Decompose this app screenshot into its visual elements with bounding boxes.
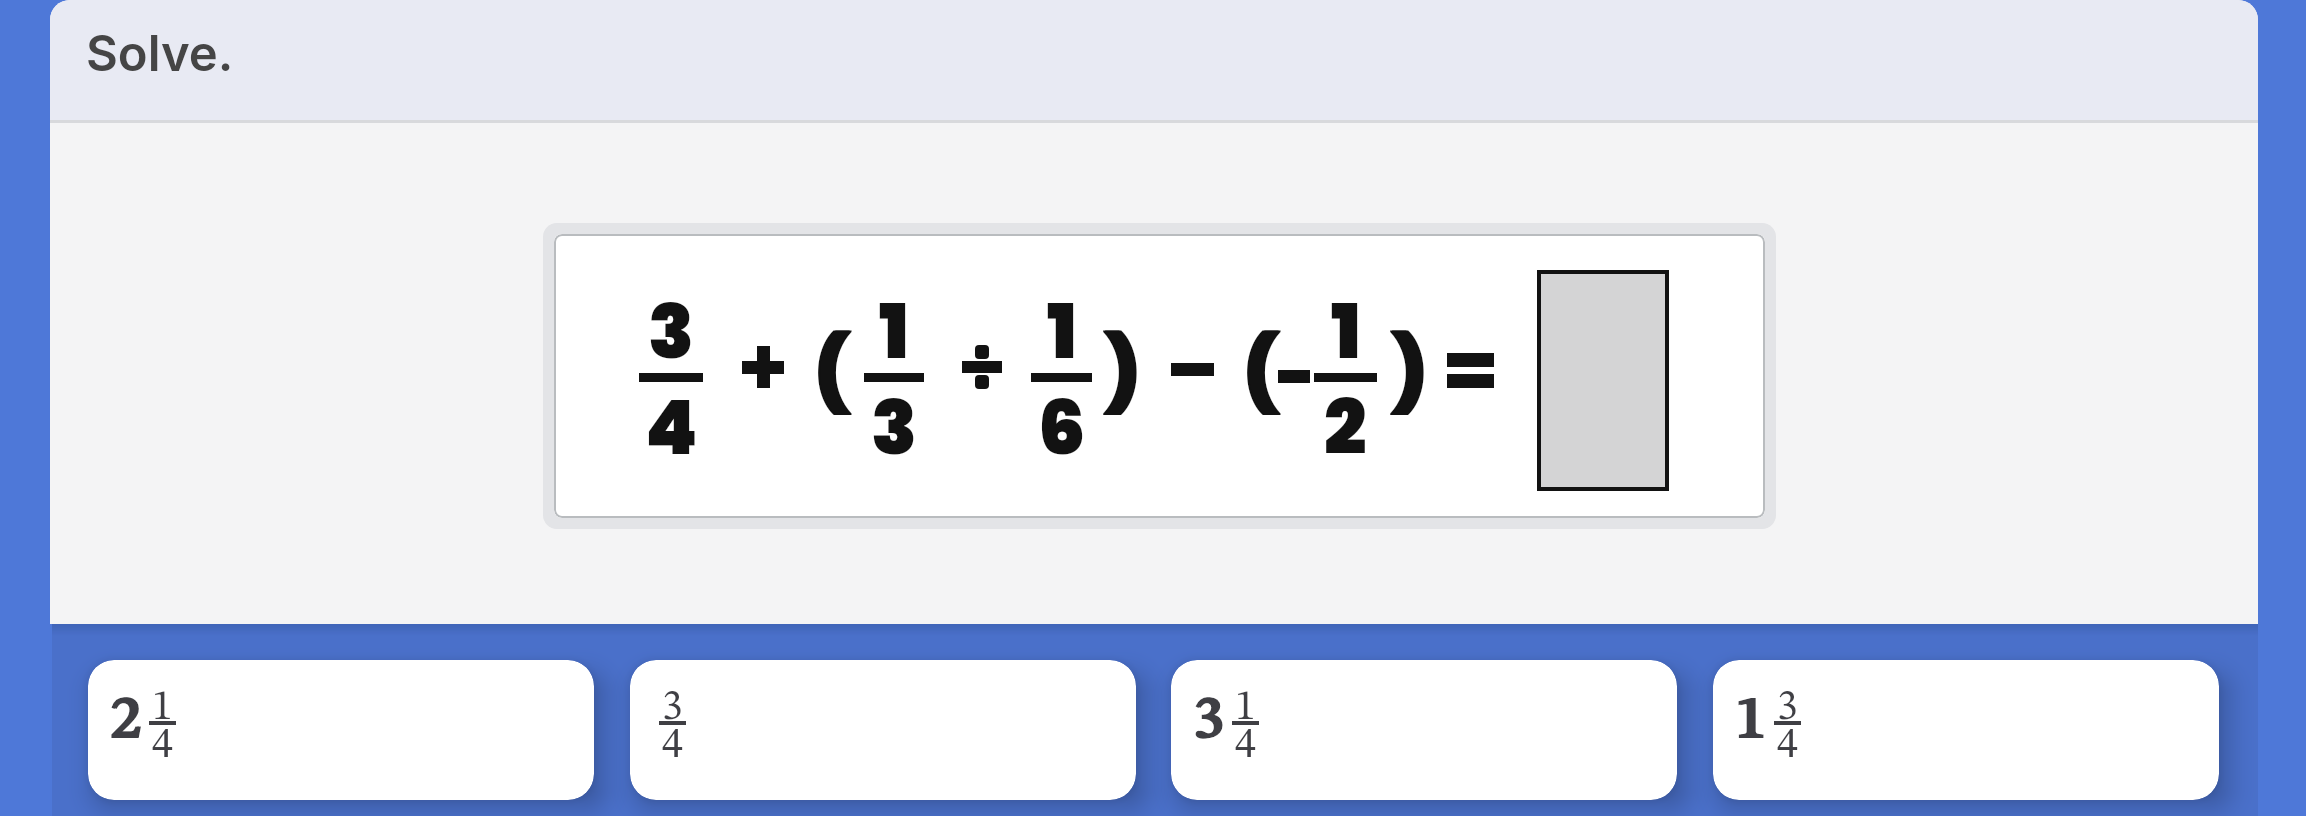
staticText: 4 [645,375,698,480]
staticText: 3 [1193,691,1223,751]
button[interactable]: 2 [88,660,594,800]
staticText: 2 [110,691,140,751]
staticText: 1 [1235,687,1256,729]
staticText: ) [1106,319,1141,424]
staticText: 1 [152,687,173,729]
staticText: 4 [152,725,173,767]
staticText: ) [1393,319,1428,424]
staticText: ( [814,319,849,424]
staticText: Solve. [86,24,234,83]
staticText: 3 [1195,691,1225,751]
button[interactable]: 3 [1171,660,1677,800]
staticText: 1 [1737,691,1767,751]
staticText: 4 [662,725,683,767]
staticText: ( [1243,319,1278,424]
staticText: 1 [1047,279,1077,384]
button[interactable]: 3 [630,660,1136,800]
staticText: 1 [1331,279,1361,384]
staticText: 4 [1235,725,1256,767]
staticText: 3 [1777,687,1798,729]
staticText: ( [1245,319,1280,424]
staticText: 2 [1324,375,1367,480]
staticText: 2 [112,691,142,751]
staticText: 6 [1038,375,1086,480]
staticText: 3 [648,279,695,384]
staticText: ( [816,319,851,424]
staticText: 3 [871,375,918,480]
staticText: 1 [1735,691,1765,751]
staticText: 1 [879,279,909,384]
staticText: 4 [1777,725,1798,767]
staticText: ) [1391,319,1426,424]
staticText: 3 [662,687,683,729]
staticText: ) [1104,319,1139,424]
button[interactable]: 1 [1713,660,2219,800]
